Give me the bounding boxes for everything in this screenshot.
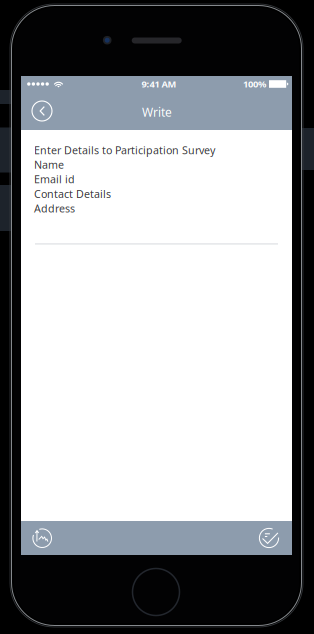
staticText: 9:41 AM (141, 78, 176, 90)
staticText: Email id (34, 172, 75, 186)
staticText: Name (34, 158, 64, 172)
staticText: 100% (243, 78, 266, 90)
button[interactable]: Back (21, 92, 63, 130)
button[interactable]: Draw signature (22, 521, 62, 555)
staticText: Enter Details to Participation Survey (34, 143, 215, 157)
button[interactable]: Submit (248, 521, 290, 555)
staticText: Write (142, 104, 172, 120)
staticText: Address (34, 201, 75, 215)
staticText: Contact Details (34, 187, 111, 201)
